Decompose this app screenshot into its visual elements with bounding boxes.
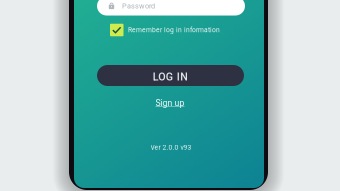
button[interactable]: Remember log in information: [110, 23, 250, 36]
button[interactable]: LOG IN: [97, 65, 244, 86]
staticText: LOG IN: [153, 70, 188, 83]
staticText: Ver 2.0.0 v93: [150, 144, 191, 151]
staticText: Sign up: [155, 98, 184, 108]
button[interactable]: Sign up: [135, 96, 205, 109]
staticText: Remember log in information: [128, 26, 220, 34]
staticText: Password: [122, 2, 155, 10]
